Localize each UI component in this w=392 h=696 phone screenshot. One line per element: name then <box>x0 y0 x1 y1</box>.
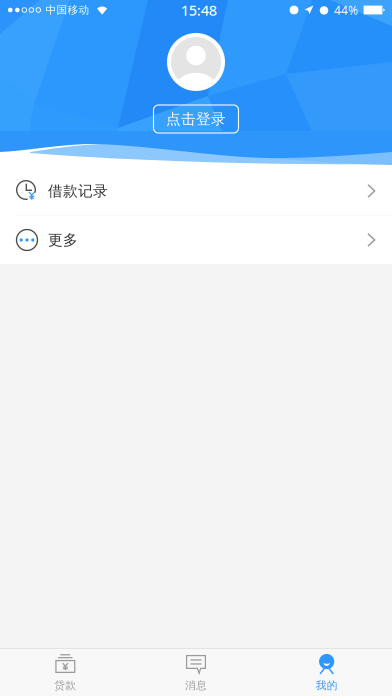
button[interactable]: 借款记录 <box>0 167 392 215</box>
button[interactable]: 点击登录 <box>153 105 238 133</box>
staticText: 我的 <box>316 679 338 692</box>
staticText: 消息 <box>185 679 207 692</box>
staticText: 贷款 <box>54 679 76 692</box>
button[interactable]: 消息 <box>131 649 261 696</box>
staticText: 15:48 <box>181 0 217 20</box>
staticText: 更多 <box>48 231 78 249</box>
staticText: 44% <box>334 2 358 18</box>
staticText: 中国移动 <box>46 3 90 16</box>
button[interactable]: 更多 <box>0 216 392 264</box>
staticText: 点击登录 <box>166 110 226 128</box>
staticText: 借款记录 <box>48 182 108 200</box>
button[interactable]: 我的 <box>261 649 392 696</box>
button[interactable]: 贷款 <box>0 649 131 696</box>
